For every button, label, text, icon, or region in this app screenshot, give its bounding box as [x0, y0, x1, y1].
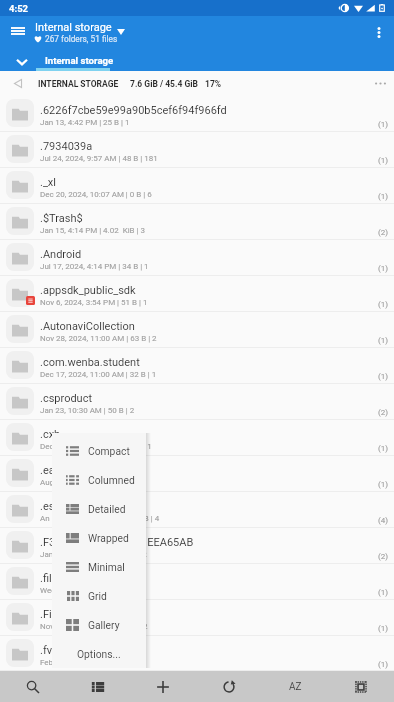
staticText: (1): [378, 624, 389, 633]
staticText: 4:52: [9, 3, 29, 14]
staticText: Dec 17, 2024, 11:00 AM | 32 B | 1: [40, 370, 386, 379]
button[interactable]: .filedir: [0, 564, 394, 600]
staticText: (1): [378, 336, 389, 345]
staticText: .com.wenba.student: [40, 356, 386, 369]
staticText: Internal storage: [35, 21, 112, 34]
button[interactable]: Refresh: [196, 671, 262, 702]
button[interactable]: Search: [0, 671, 65, 702]
staticText: .cxh: [40, 428, 386, 441]
button[interactable]: Grid: [52, 581, 146, 610]
staticText: Options...: [77, 648, 121, 660]
button[interactable]: ._xl: [0, 168, 394, 204]
button[interactable]: .eank: [0, 456, 394, 492]
button[interactable]: Sort: [262, 671, 328, 702]
button[interactable]: .$Trash$: [0, 204, 394, 240]
button[interactable]: .appsdk_public_sdk: [0, 276, 394, 312]
staticText: ._xl: [40, 176, 386, 189]
staticText: (1): [378, 480, 389, 489]
staticText: (1): [378, 156, 389, 165]
button[interactable]: Internal storage: [36, 52, 110, 71]
staticText: Aug 3, 2024, 2:11 PM | 21 B | 1: [40, 478, 386, 487]
staticText: (1): [378, 660, 389, 669]
button[interactable]: .AutonaviCollection: [0, 312, 394, 348]
staticText: (2): [378, 408, 389, 417]
button[interactable]: .F3A1C20B7CAF38C1EEA65AB: [0, 528, 394, 564]
staticText: Jan 23, 10:30 AM | 50 B | 2: [40, 406, 386, 415]
staticText: .filedir: [40, 572, 386, 585]
staticText: Jul 17, 2024, 4:14 PM | 34 B | 1: [40, 262, 386, 271]
button[interactable]: .7934039a: [0, 132, 394, 168]
button[interactable]: .escape: [0, 492, 394, 528]
staticText: Nov 6, 2024, 3:54 PM | 51 B | 1: [40, 298, 386, 307]
staticText: Internal storage: [45, 55, 114, 66]
staticText: .6226f7cbe59e99a90b5cef6f94f966fd: [40, 104, 386, 117]
staticText: Jul 24, 2024, 9:57 AM | 48 B | 181: [40, 154, 386, 163]
button[interactable]: Open navigation drawer: [4, 17, 32, 45]
button[interactable]: View mode: [65, 671, 130, 702]
button[interactable]: Minimal: [52, 552, 146, 581]
staticText: Dec 2, 2024, 10:01 AM | 12 B | 1: [40, 442, 386, 451]
staticText: Jan 9, 2024, 8:18 AM | 72 B | 2: [40, 550, 386, 559]
staticText: .Android: [40, 248, 386, 261]
button[interactable]: Select: [328, 671, 394, 702]
staticText: Wed 2, 2024, 1:02 PM | 9 B | 9: [40, 586, 386, 595]
staticText: Wrapped: [88, 532, 129, 544]
staticText: 17%: [205, 79, 222, 89]
button[interactable]: Switch storage: [113, 24, 129, 40]
button[interactable]: More options: [364, 17, 394, 47]
staticText: 267 folders, 51 files: [45, 34, 118, 44]
staticText: Jan 15, 4:14 PM | 4.02 KiB | 3: [40, 226, 386, 235]
button[interactable]: .com.wenba.student: [0, 348, 394, 384]
staticText: (1): [378, 192, 389, 201]
staticText: Nov 4, 2024, 5:01 PM | 15 B | 2: [40, 622, 386, 631]
staticText: (1): [378, 120, 389, 129]
staticText: Compact: [88, 445, 130, 457]
staticText: Nov 28, 2024, 11:00 AM | 63 B | 2: [40, 334, 386, 343]
staticText: Columned: [88, 474, 135, 486]
staticText: .eank: [40, 464, 386, 477]
staticText: .AutonaviCollection: [40, 320, 386, 333]
button[interactable]: .cxh: [0, 420, 394, 456]
button[interactable]: .Fileup: [0, 600, 394, 636]
button[interactable]: Options...: [52, 639, 146, 668]
button[interactable]: Go up: [12, 71, 24, 96]
staticText: .7934039a: [40, 140, 386, 153]
button[interactable]: Collapse: [11, 52, 33, 71]
staticText: (1): [378, 588, 389, 597]
button[interactable]: Columned: [52, 465, 146, 494]
button[interactable]: .csproduct: [0, 384, 394, 420]
staticText: (4): [378, 516, 389, 525]
staticText: .appsdk_public_sdk: [40, 284, 386, 297]
button[interactable]: Detailed: [52, 494, 146, 523]
staticText: An Mar 4, 2024, 9:22 AM | 11 B | 4: [40, 514, 386, 523]
staticText: .escape: [40, 500, 386, 513]
staticText: Jan 13, 4:42 PM | 25 B | 1: [40, 118, 386, 127]
staticText: .$Trash$: [40, 212, 386, 225]
staticText: AZ: [289, 681, 302, 693]
button[interactable]: Path options: [366, 71, 394, 96]
staticText: .fvmo: [40, 644, 386, 657]
staticText: Minimal: [88, 561, 125, 573]
staticText: INTERNAL STORAGE: [38, 79, 119, 89]
staticText: Grid: [88, 590, 107, 602]
staticText: (1): [378, 444, 389, 453]
button[interactable]: Wrapped: [52, 523, 146, 552]
button[interactable]: Create new: [130, 671, 196, 702]
staticText: Dec 20, 2024, 10:07 AM | 0 B | 6: [40, 190, 386, 199]
staticText: .csproduct: [40, 392, 386, 405]
button[interactable]: .Android: [0, 240, 394, 276]
staticText: (1): [378, 372, 389, 381]
staticText: (1): [378, 300, 389, 309]
button[interactable]: Gallery: [52, 610, 146, 639]
staticText: 7.6 GiB / 45.4 GiB: [130, 79, 198, 89]
staticText: (1): [378, 264, 389, 273]
button[interactable]: .fvmo: [0, 636, 394, 671]
button[interactable]: .6226f7cbe59e99a90b5cef6f94f966fd: [0, 96, 394, 132]
staticText: Detailed: [88, 503, 126, 515]
staticText: (2): [378, 228, 389, 237]
staticText: .Fileup: [40, 608, 386, 621]
staticText: Feb 1, 2024, 6:44 PM | 30 B | 1: [40, 658, 386, 667]
staticText: (2): [378, 552, 389, 561]
button[interactable]: Compact: [52, 436, 146, 465]
staticText: Gallery: [88, 619, 120, 631]
